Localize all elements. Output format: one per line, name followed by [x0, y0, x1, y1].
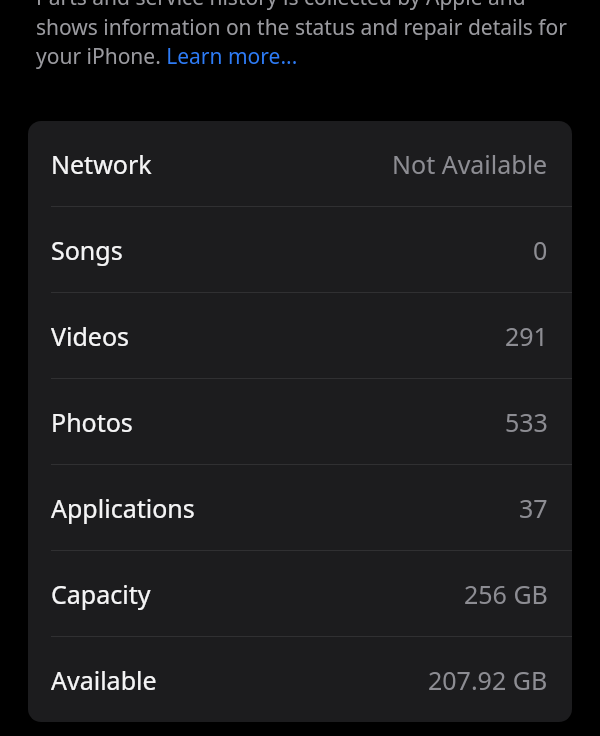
staticText: 533 — [505, 405, 548, 439]
button[interactable]: Songs — [28, 207, 572, 292]
button[interactable]: Network — [28, 121, 572, 206]
staticText: 291 — [505, 319, 548, 353]
staticText: Not Available — [392, 147, 548, 181]
button[interactable]: Available — [28, 637, 572, 722]
staticText: Songs — [51, 233, 123, 267]
staticText: 37 — [519, 491, 548, 525]
button[interactable]: Applications — [28, 465, 572, 550]
staticText: Available — [51, 663, 157, 697]
staticText: Videos — [51, 319, 130, 353]
staticText: Capacity — [51, 577, 151, 611]
staticText: Network — [51, 147, 152, 181]
button[interactable]: Videos — [28, 293, 572, 378]
button[interactable]: Photos — [28, 379, 572, 464]
staticText: Applications — [51, 491, 195, 525]
staticText: Parts and service history is collected b… — [36, 0, 572, 70]
staticText: Photos — [51, 405, 133, 439]
staticText: 207.92 GB — [428, 663, 548, 697]
staticText: 0 — [533, 233, 548, 267]
staticText: 256 GB — [464, 577, 548, 611]
button[interactable]: Capacity — [28, 551, 572, 636]
